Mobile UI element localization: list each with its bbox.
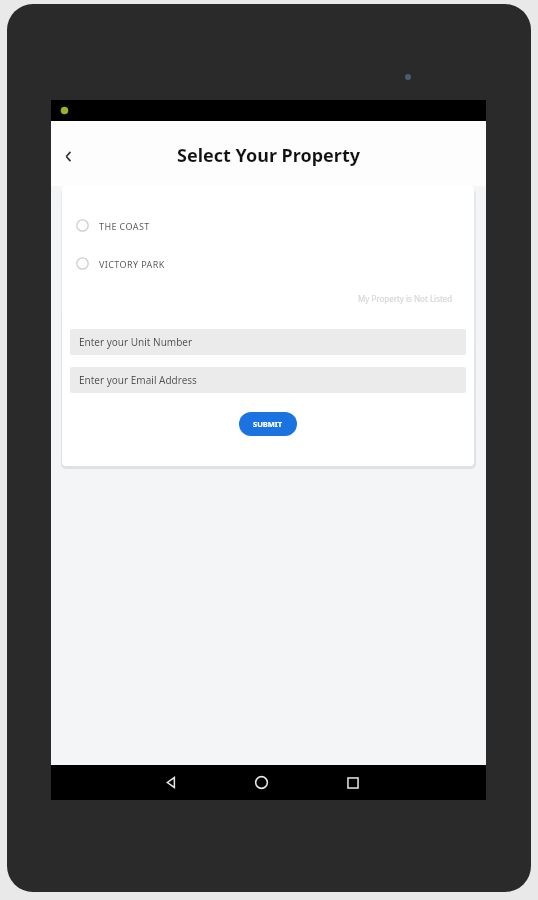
staticText: VICTORY PARK [99,258,165,270]
staticText: My Property is Not Listed [358,293,453,304]
staticText: THE COAST [99,220,150,232]
staticText: Select Your Property [177,143,360,168]
button[interactable]: Home [241,765,281,800]
button[interactable]: Enter your Unit Number [70,329,466,355]
staticText: Enter your Email Address [79,373,197,387]
button[interactable]: VICTORY PARK [62,254,474,273]
staticText: Enter your Unit Number [79,335,193,349]
button[interactable]: THE COAST [62,216,474,235]
button[interactable]: Recent apps [333,765,373,800]
button[interactable]: SUBMIT [239,412,297,436]
staticText: SUBMIT [253,419,283,429]
button[interactable]: My Property is Not Listed [356,291,455,306]
button[interactable]: Back [151,765,191,800]
button[interactable]: Back [51,139,85,173]
button[interactable]: Enter your Email Address [70,367,466,393]
